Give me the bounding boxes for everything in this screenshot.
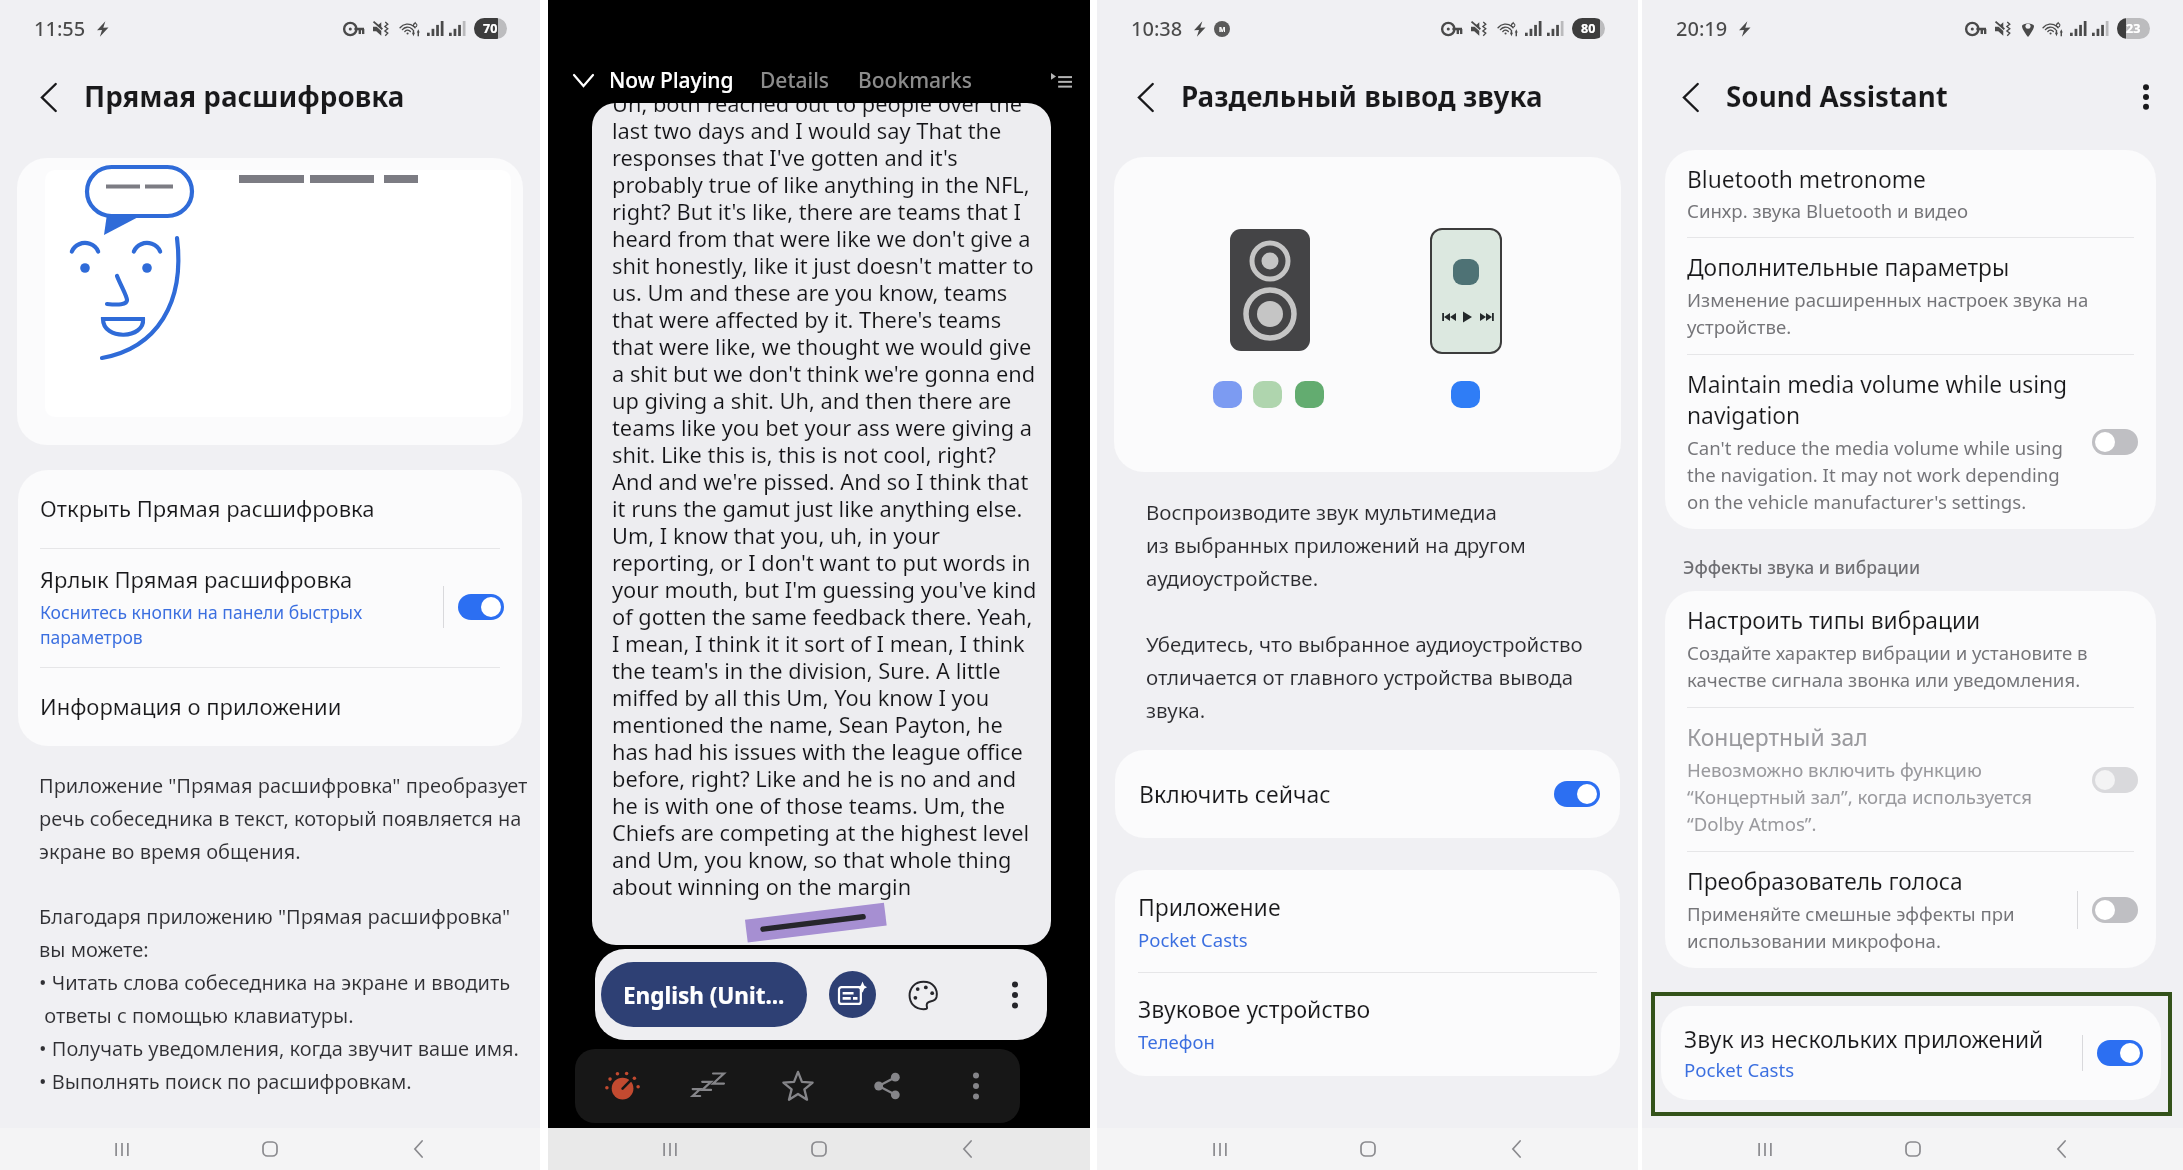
button[interactable]: Share: [842, 1049, 931, 1123]
staticText: Информация о приложении: [40, 692, 342, 722]
button[interactable]: Приложение: [1115, 870, 1620, 972]
button[interactable]: More options: [2125, 76, 2167, 118]
staticText: Убедитесь, что выбранное аудиоустройство…: [1146, 626, 1598, 725]
button[interactable]: Концертный зал: [1665, 708, 2156, 851]
staticText: 70: [483, 20, 498, 37]
button[interactable]: Звук из нескольких приложений: [1661, 1006, 2161, 1100]
staticText: Раздельный вывод звука: [1181, 78, 1543, 116]
staticText: Uh, both reached out to people over the …: [612, 103, 1041, 901]
staticText: 11:55: [34, 15, 86, 42]
button[interactable]: Back: [1987, 1128, 2135, 1170]
staticText: Now Playing: [609, 66, 734, 94]
staticText: Воспроизводите звук мультимедиа из выбра…: [1146, 494, 1526, 593]
staticText: 80: [1581, 20, 1596, 37]
button[interactable]: Turn off: [1554, 781, 1600, 807]
button[interactable]: Playback speed: [575, 1049, 664, 1123]
button[interactable]: Home: [196, 1128, 344, 1170]
staticText: Details: [760, 66, 830, 94]
staticText: Преобразователь голоса: [1687, 866, 1963, 897]
staticText: Bookmarks: [858, 66, 972, 94]
button[interactable]: Turn off: [2097, 1040, 2143, 1066]
staticText: • Получать уведомления, когда звучит ваш…: [39, 1030, 519, 1063]
staticText: M: [1219, 25, 1226, 34]
button[interactable]: Back: [1123, 74, 1169, 120]
button[interactable]: Bookmarks: [856, 60, 974, 100]
staticText: Эффекты звука и вибрации: [1683, 555, 1921, 579]
staticText: • Выполнять поиск по расшифровкам.: [39, 1063, 412, 1096]
button[interactable]: Maintain media volume while using naviga…: [1665, 355, 2156, 529]
staticText: Синхр. звука Bluetooth и видео: [1687, 198, 1969, 223]
staticText: English (Unit...: [623, 980, 785, 1010]
button[interactable]: Recents: [596, 1128, 744, 1170]
button[interactable]: Back: [893, 1128, 1042, 1170]
staticText: Телефон: [1138, 1029, 1215, 1054]
button[interactable]: Turn on: [2092, 429, 2138, 455]
staticText: Настроить типы вибрации: [1687, 605, 1981, 636]
staticText: Bluetooth metronome: [1687, 164, 1926, 195]
staticText: Sound Assistant: [1726, 78, 2125, 116]
staticText: Включить сейчас: [1139, 779, 1554, 810]
button[interactable]: Включить сейчас: [1115, 750, 1620, 838]
button[interactable]: Star: [753, 1049, 842, 1123]
button[interactable]: Back: [1442, 1128, 1590, 1170]
button[interactable]: More options: [931, 1049, 1020, 1123]
staticText: 10:38: [1131, 15, 1183, 42]
button[interactable]: Turn on: [2092, 767, 2138, 793]
button[interactable]: Настроить типы вибрации: [1665, 591, 2156, 707]
staticText: Изменение расширенных настроек звука на …: [1687, 286, 2134, 340]
button[interactable]: Home: [744, 1128, 893, 1170]
button[interactable]: Преобразователь голоса: [1665, 852, 2156, 968]
button[interactable]: Информация о приложении: [18, 668, 522, 746]
button[interactable]: Back: [26, 74, 72, 120]
staticText: Невозможно включить функцию “Концертный …: [1687, 756, 2033, 837]
button[interactable]: Sleep timer: [664, 1049, 753, 1123]
button[interactable]: Bluetooth metronome: [1665, 150, 2156, 237]
staticText: Прямая расшифровка: [84, 78, 405, 116]
staticText: • Читать слова собеседника на экране и в…: [39, 964, 511, 1030]
staticText: Pocket Casts: [1138, 927, 1248, 952]
staticText: Открыть Прямая расшифровка: [40, 494, 375, 524]
button[interactable]: Auto caption: [829, 971, 876, 1018]
staticText: Дополнительные параметры: [1687, 252, 2010, 283]
staticText: Maintain media volume while using naviga…: [1687, 369, 2082, 431]
staticText: Звуковое устройство: [1138, 994, 1371, 1025]
button[interactable]: Дополнительные параметры: [1665, 238, 2156, 354]
staticText: Благодаря приложению "Прямая расшифровка…: [39, 898, 511, 964]
button[interactable]: Home: [1294, 1128, 1442, 1170]
staticText: Приложение: [1138, 892, 1281, 923]
button[interactable]: Recents: [1145, 1128, 1294, 1170]
staticText: Приложение "Прямая расшифровка" преобраз…: [39, 767, 528, 866]
button[interactable]: Ярлык Прямая расшифровка: [18, 549, 522, 667]
button[interactable]: Home: [1839, 1128, 1987, 1170]
staticText: Концертный зал: [1687, 722, 1868, 753]
button[interactable]: Now Playing: [607, 60, 736, 100]
button[interactable]: Back: [1668, 74, 1714, 120]
staticText: Звук из нескольких приложений: [1684, 1024, 2044, 1055]
button[interactable]: Turn off: [458, 594, 504, 620]
staticText: Can't reduce the media volume while usin…: [1687, 434, 2082, 515]
button[interactable]: Recents: [48, 1128, 196, 1170]
staticText: Создайте характер вибрации и установите …: [1687, 639, 2134, 693]
button[interactable]: English (Unit...: [601, 962, 807, 1027]
staticText: Применяйте смешные эффекты при использов…: [1687, 900, 2069, 954]
button[interactable]: Back: [344, 1128, 492, 1170]
button[interactable]: Открыть Прямая расшифровка: [18, 470, 522, 548]
button[interactable]: Queue: [1044, 63, 1078, 97]
staticText: Pocket Casts: [1684, 1057, 1795, 1082]
button[interactable]: More options: [995, 975, 1035, 1015]
staticText: Коснитесь кнопки на панели быстрых парам…: [40, 599, 435, 649]
staticText: 23: [2126, 20, 2141, 37]
staticText: Ярлык Прямая расшифровка: [40, 565, 353, 595]
staticText: 20:19: [1676, 15, 1728, 42]
button[interactable]: Turn on: [2092, 897, 2138, 923]
button[interactable]: Details: [758, 60, 832, 100]
button[interactable]: Recents: [1690, 1128, 1839, 1170]
button[interactable]: Звуковое устройство: [1115, 973, 1620, 1076]
button[interactable]: Theme: [900, 972, 946, 1018]
button[interactable]: Collapse: [564, 61, 602, 99]
